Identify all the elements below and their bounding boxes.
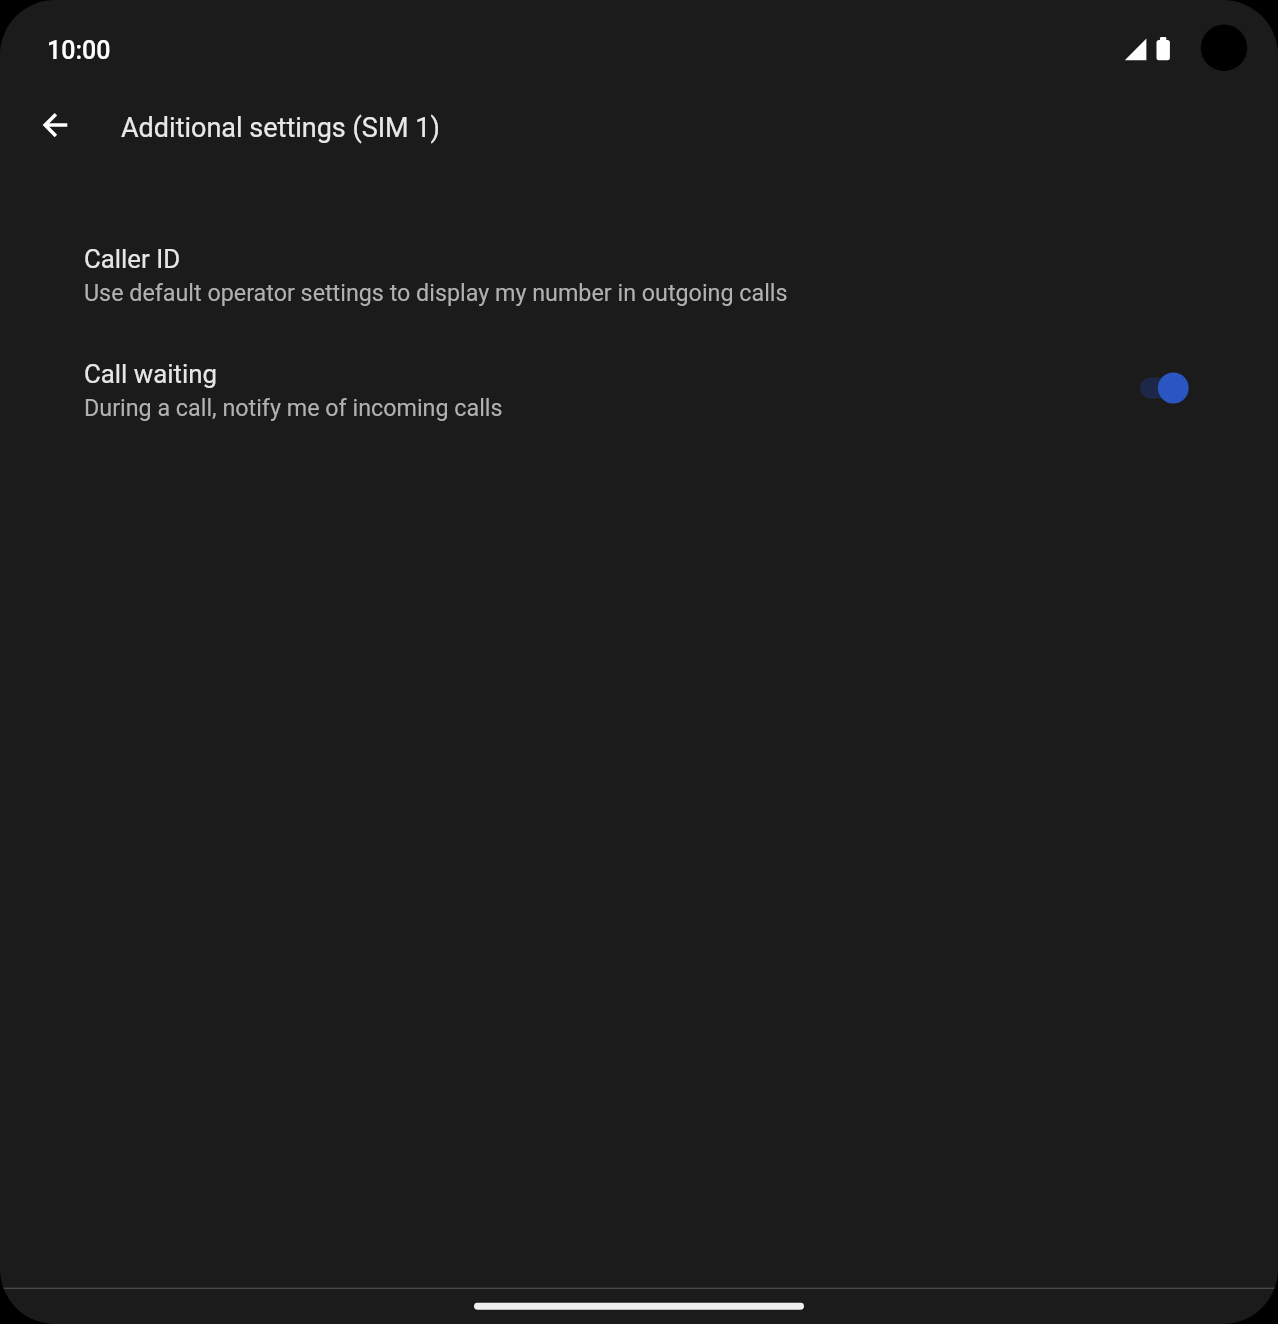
button[interactable]: Navigate up bbox=[36, 106, 74, 144]
button[interactable]: Call waiting toggle, on bbox=[1133, 358, 1195, 418]
staticText: Use default operator settings to display… bbox=[84, 279, 788, 306]
staticText: 10:00 bbox=[47, 36, 111, 65]
staticText: Call waiting bbox=[84, 359, 217, 389]
button[interactable]: Caller ID bbox=[0, 217, 1278, 332]
button[interactable]: Call waiting bbox=[0, 332, 1278, 447]
staticText: Caller ID bbox=[84, 244, 181, 274]
staticText: Additional settings (SIM 1) bbox=[121, 112, 440, 144]
staticText: During a call, notify me of incoming cal… bbox=[84, 394, 503, 421]
